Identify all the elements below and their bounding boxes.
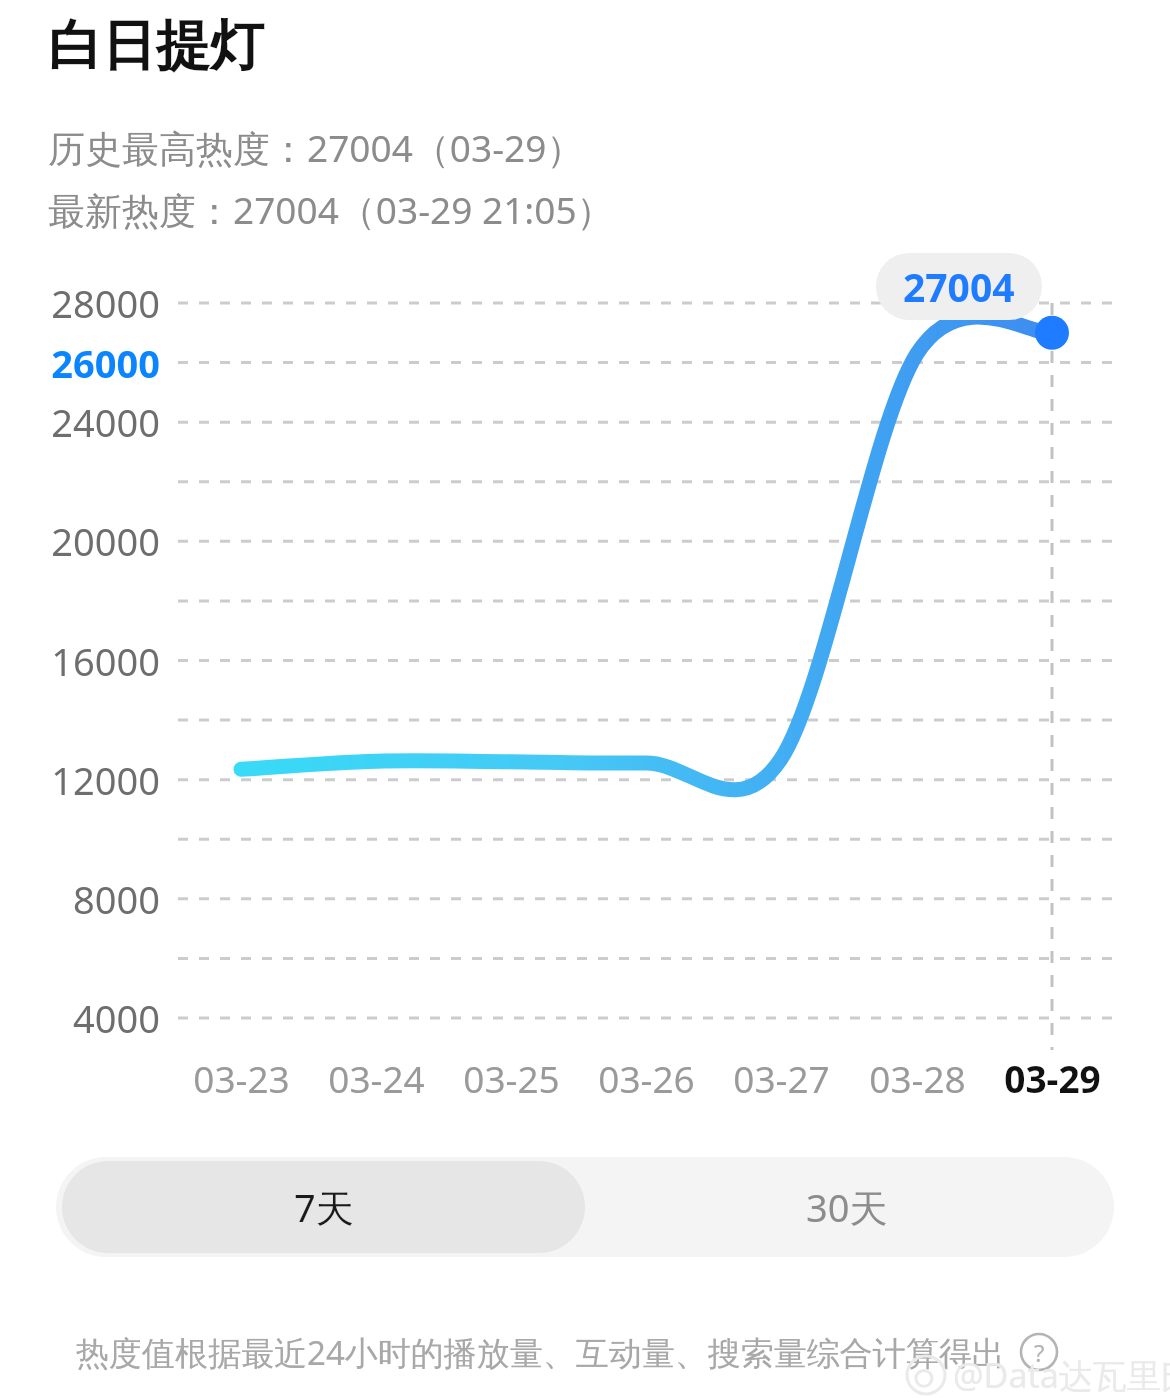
staticText: 26000 — [51, 337, 160, 389]
staticText: 03-27 — [733, 1053, 830, 1103]
staticText: 03-28 — [869, 1053, 966, 1103]
staticText: 历史最高热度：27004（03-29） — [48, 122, 584, 173]
staticText: 8000 — [73, 873, 160, 925]
staticText: 热度值根据最近24小时的播放量、互动量、搜索量综合计算得出 — [76, 1330, 1005, 1375]
staticText: 27004 — [903, 260, 1015, 313]
staticText: 24000 — [51, 396, 160, 448]
staticText: 03-26 — [598, 1053, 695, 1103]
staticText: 03-29 — [1004, 1053, 1101, 1103]
staticText: 28000 — [51, 277, 160, 329]
button[interactable]: 30天 — [585, 1161, 1108, 1253]
staticText: 最新热度：27004（03-29 21:05） — [48, 184, 614, 235]
staticText: 30天 — [806, 1181, 888, 1233]
staticText: 16000 — [51, 635, 160, 687]
staticText: 12000 — [51, 754, 160, 806]
staticText: 03-23 — [193, 1053, 290, 1103]
staticText: 4000 — [73, 992, 160, 1044]
staticText: 03-25 — [463, 1053, 560, 1103]
staticText: 20000 — [51, 515, 160, 567]
staticText: ? — [1034, 1336, 1045, 1369]
button[interactable]: 帮助 — [1019, 1332, 1059, 1372]
staticText: 03-24 — [328, 1053, 425, 1103]
staticText: @Data达瓦里氏 — [953, 1352, 1170, 1398]
button[interactable]: 7天 — [62, 1161, 585, 1253]
staticText: 白日提灯 — [48, 12, 264, 80]
staticText: 7天 — [294, 1181, 354, 1233]
